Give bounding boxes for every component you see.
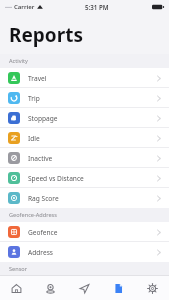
- button[interactable]: Rag Score: [0, 188, 169, 208]
- staticText: Reports: [9, 22, 83, 48]
- staticText: Geofence-Address: [9, 211, 57, 219]
- button[interactable]: Speed vs Distance: [0, 168, 169, 188]
- staticText: 5:31 PM: [85, 3, 109, 11]
- button[interactable]: Idle: [0, 128, 169, 148]
- button[interactable]: Trip: [0, 88, 169, 108]
- staticText: Trip: [28, 94, 40, 103]
- staticText: Sensor: [9, 265, 28, 273]
- staticText: Inactive: [28, 154, 53, 163]
- button[interactable]: Geofence: [0, 222, 169, 242]
- staticText: Speed vs Distance: [28, 174, 84, 183]
- button[interactable]: Home: [0, 276, 33, 300]
- staticText: Stoppage: [28, 114, 58, 123]
- button[interactable]: Travel: [0, 68, 169, 88]
- button[interactable]: Reports: [101, 276, 135, 300]
- button[interactable]: Navigate: [67, 276, 101, 300]
- staticText: Geofence: [28, 228, 58, 237]
- staticText: Carrier: [14, 3, 35, 11]
- staticText: Address: [28, 248, 53, 257]
- button[interactable]: Settings: [135, 276, 169, 300]
- staticText: Activity: [9, 57, 28, 65]
- staticText: Rag Score: [28, 194, 59, 203]
- button[interactable]: Inactive: [0, 148, 169, 168]
- button[interactable]: Stoppage: [0, 108, 169, 128]
- button[interactable]: Places: [33, 276, 67, 300]
- staticText: Idle: [28, 134, 40, 143]
- staticText: Travel: [28, 74, 47, 83]
- button[interactable]: Address: [0, 242, 169, 262]
